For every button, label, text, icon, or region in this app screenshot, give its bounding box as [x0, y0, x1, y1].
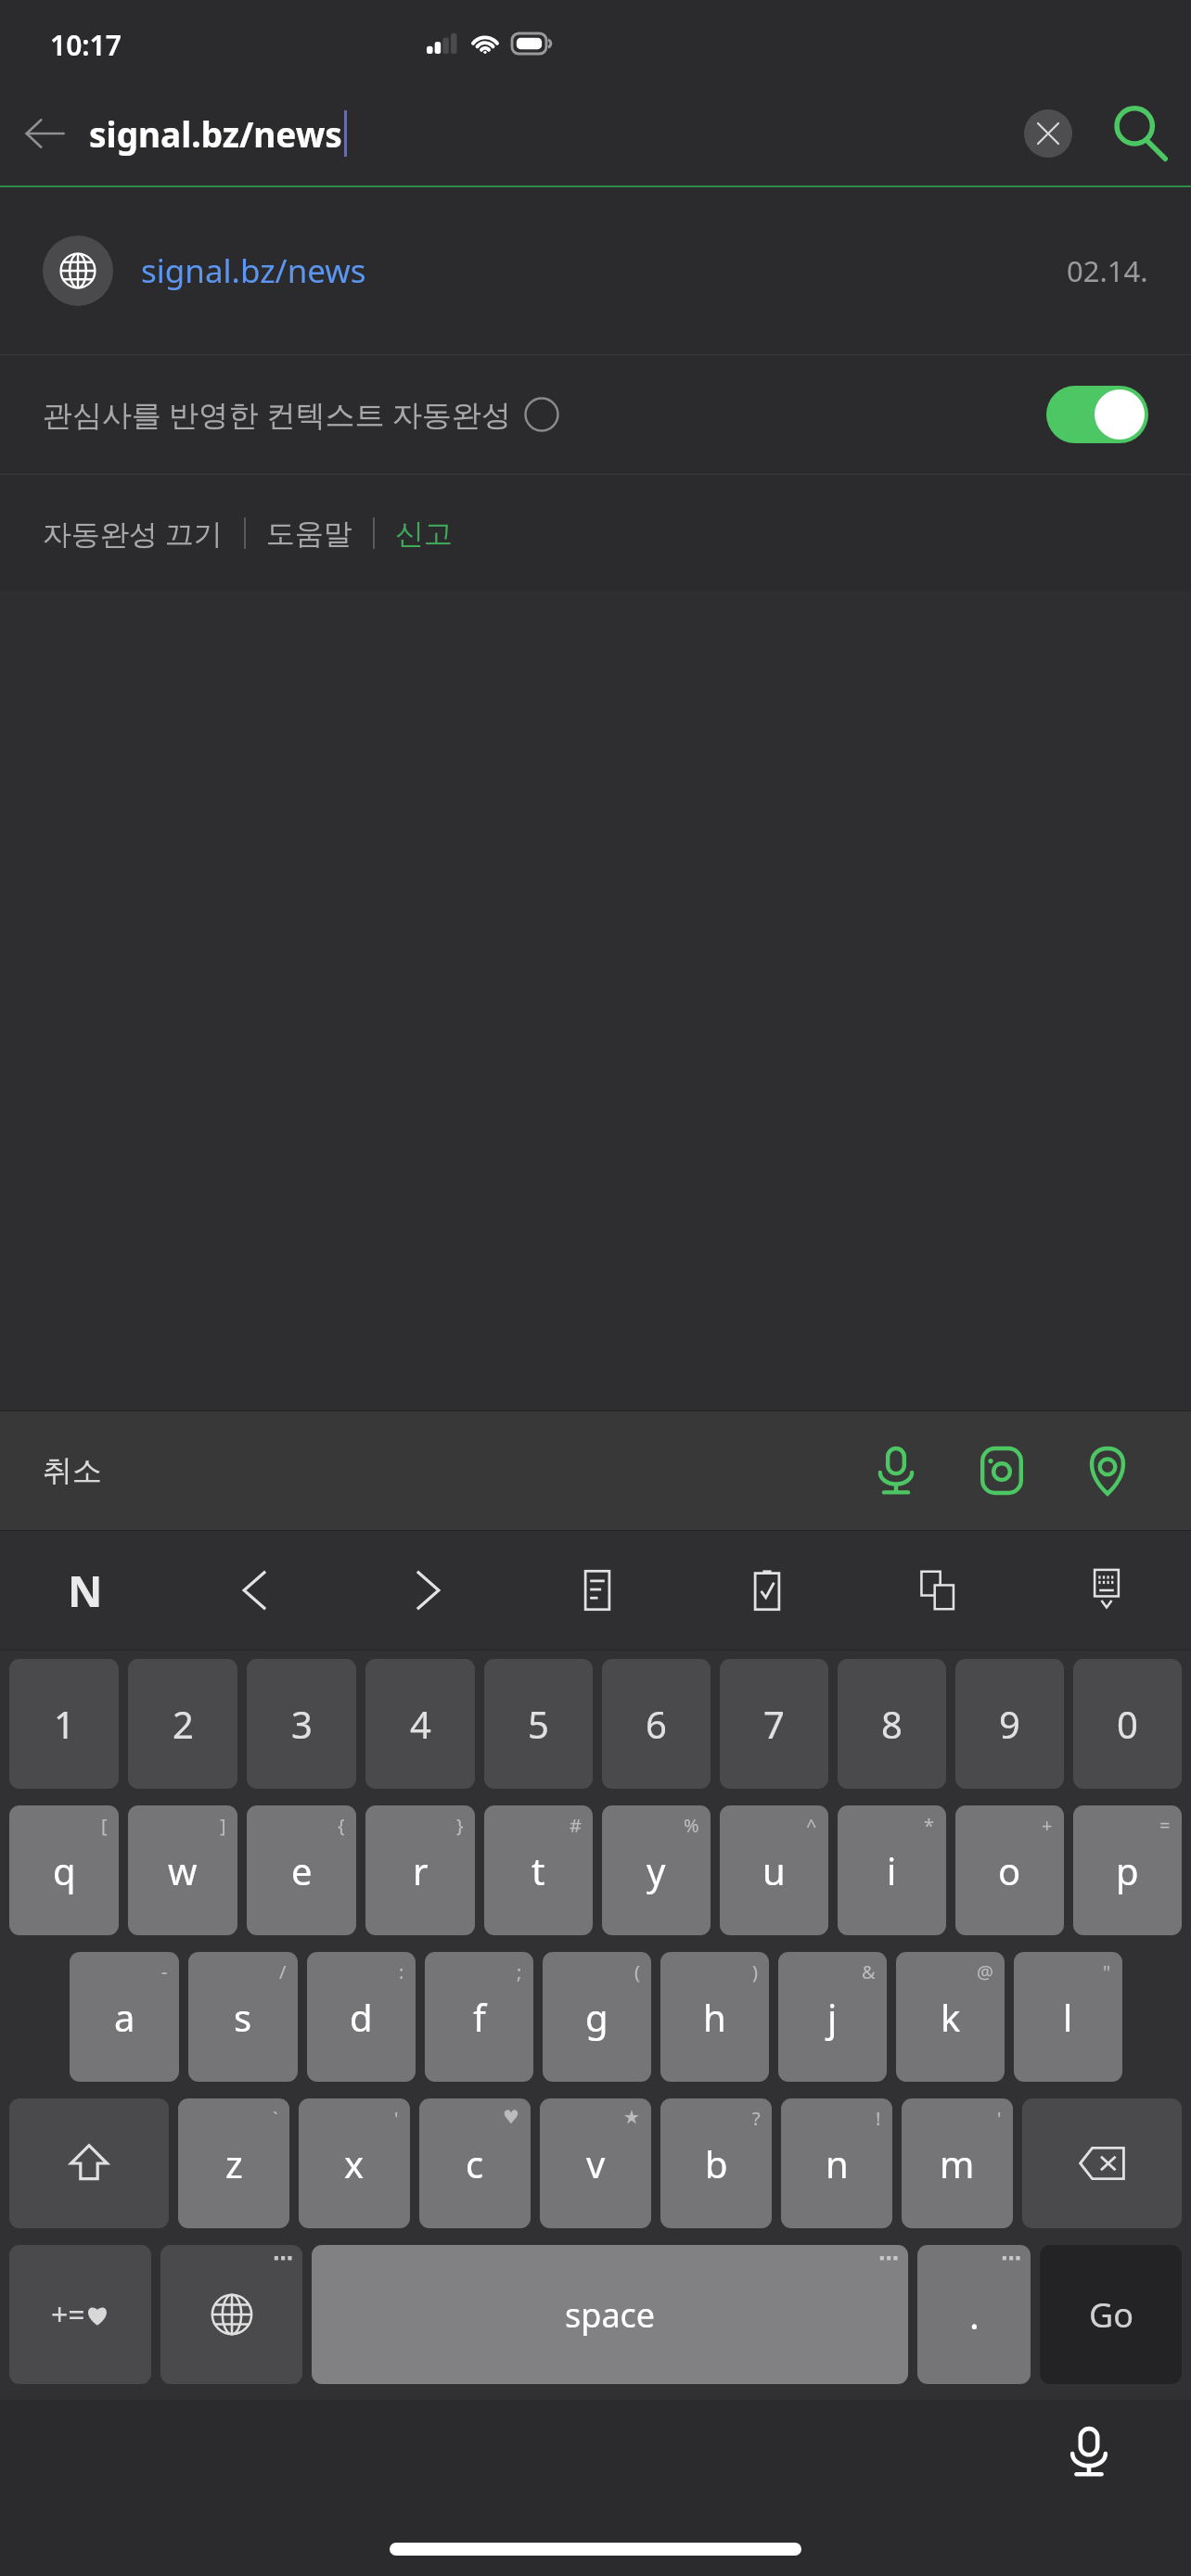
button[interactable]: x [299, 2098, 410, 2228]
staticText: k [941, 1992, 961, 2042]
button[interactable]: h [660, 1952, 769, 2082]
button[interactable]: Translate [852, 1531, 1021, 1650]
button[interactable]: z [178, 2098, 289, 2228]
button[interactable] [9, 2098, 169, 2228]
button[interactable]: 관심사를 반영한 컨텍스트 자동완성 [0, 355, 1191, 474]
button[interactable]: signal.bz/news [0, 187, 1191, 354]
button[interactable]: m [902, 2098, 1013, 2228]
staticText: h [703, 1992, 726, 2042]
staticText: i [887, 1845, 897, 1895]
staticText: ★ [623, 2106, 640, 2127]
button[interactable]: u [720, 1805, 828, 1935]
button[interactable]: Voice search [855, 1430, 937, 1511]
staticText: b [705, 2138, 728, 2188]
button[interactable]: Previous [171, 1531, 341, 1650]
button[interactable]: += [9, 2245, 151, 2384]
staticText: ] [220, 1813, 226, 1838]
button[interactable]: 도움말 [266, 516, 352, 552]
button[interactable]: g [543, 1952, 651, 2082]
button[interactable]: Clipboard [682, 1531, 852, 1650]
staticText: * [924, 1813, 935, 1838]
button[interactable]: v [540, 2098, 651, 2228]
staticText: . [969, 2289, 980, 2340]
button[interactable]: 자동완성 끄기 [43, 514, 224, 553]
staticText: ) [752, 1959, 758, 1984]
button[interactable]: Clear [1007, 93, 1089, 174]
staticText: g [585, 1992, 608, 2042]
staticText: space [565, 2292, 656, 2338]
button[interactable]: c [419, 2098, 531, 2228]
button[interactable]: j [778, 1952, 887, 2082]
button[interactable]: Toggle autocomplete [1046, 386, 1148, 443]
staticText: += [51, 2294, 85, 2335]
staticText: 9 [999, 1699, 1020, 1749]
button[interactable]: space [312, 2245, 908, 2384]
staticText: : [399, 1959, 404, 1984]
button[interactable]: Go [1040, 2245, 1182, 2384]
button[interactable]: Voice input [1044, 2407, 1133, 2496]
staticText: 0 [1117, 1699, 1138, 1749]
button[interactable]: Notes [512, 1531, 682, 1650]
staticText: @ [977, 1959, 993, 1984]
button[interactable] [1022, 2098, 1182, 2228]
button[interactable]: Back [0, 89, 89, 178]
staticText: z [225, 2138, 243, 2188]
button[interactable]: d [307, 1952, 416, 2082]
button[interactable]: 2 [128, 1659, 237, 1789]
staticText: ' [394, 2106, 399, 2131]
button[interactable]: 4 [365, 1659, 475, 1789]
staticText: ⋯ [1001, 2247, 1021, 2271]
staticText: } [456, 1813, 464, 1838]
staticText: f [473, 1992, 486, 2042]
staticText: signal.bz/news [89, 110, 342, 157]
button[interactable]: n [781, 2098, 892, 2228]
button[interactable]: f [425, 1952, 533, 2082]
button[interactable]: s [188, 1952, 298, 2082]
button[interactable]: . [917, 2245, 1031, 2384]
staticText: t [531, 1845, 545, 1895]
staticText: 10:17 [50, 26, 122, 64]
staticText: q [53, 1845, 76, 1895]
button[interactable]: Lens search [961, 1430, 1043, 1511]
button[interactable]: Hide keyboard [1021, 1531, 1191, 1650]
button[interactable]: 7 [720, 1659, 828, 1789]
staticText: = [1159, 1813, 1171, 1838]
button[interactable]: e [247, 1805, 356, 1935]
button[interactable]: 취소 [43, 1452, 102, 1489]
staticText: 7 [763, 1699, 785, 1749]
button[interactable]: Change language [160, 2245, 302, 2384]
button[interactable]: p [1073, 1805, 1182, 1935]
button[interactable]: a [70, 1952, 179, 2082]
staticText: Go [1089, 2292, 1133, 2338]
button[interactable]: Search [1089, 83, 1191, 185]
button[interactable]: 신고 [395, 516, 453, 552]
staticText: - [161, 1959, 168, 1984]
button[interactable]: w [128, 1805, 237, 1935]
button[interactable]: 6 [602, 1659, 711, 1789]
button[interactable]: Naver [0, 1531, 171, 1650]
button[interactable]: 1 [9, 1659, 119, 1789]
button[interactable]: o [955, 1805, 1064, 1935]
button[interactable]: b [660, 2098, 772, 2228]
button[interactable]: q [9, 1805, 119, 1935]
button[interactable]: y [602, 1805, 711, 1935]
button[interactable]: 3 [247, 1659, 356, 1789]
button[interactable]: t [484, 1805, 593, 1935]
button[interactable]: r [365, 1805, 475, 1935]
staticText: r [413, 1845, 429, 1895]
button[interactable]: i [838, 1805, 946, 1935]
button[interactable]: l [1014, 1952, 1122, 2082]
button[interactable]: 8 [838, 1659, 946, 1789]
button[interactable]: 0 [1073, 1659, 1182, 1789]
button[interactable]: 9 [955, 1659, 1064, 1789]
staticText: + [1042, 1813, 1053, 1838]
staticText: p [1116, 1845, 1139, 1895]
button[interactable]: Next [341, 1531, 512, 1650]
button[interactable]: 5 [484, 1659, 593, 1789]
button[interactable]: k [896, 1952, 1005, 2082]
staticText: n [826, 2138, 849, 2188]
button[interactable]: Place search [1067, 1430, 1148, 1511]
staticText: 02.14. [1067, 251, 1148, 290]
staticText: 취소 [43, 1452, 102, 1489]
staticText: o [998, 1845, 1021, 1895]
